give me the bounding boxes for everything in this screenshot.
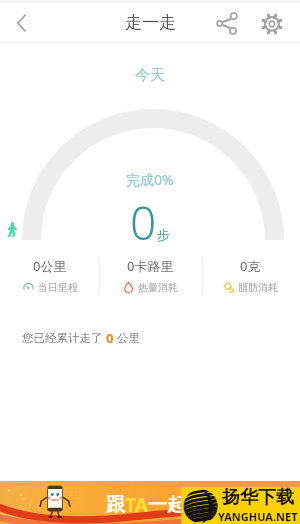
staticText: 0 [106, 329, 114, 347]
staticText: 公里 [114, 330, 140, 346]
staticText: 您已经累计走了 [22, 330, 106, 346]
staticText: 当日里程 [38, 281, 78, 294]
staticText: 走一走 [125, 12, 176, 33]
button[interactable]: 0公里 [0, 248, 100, 303]
button[interactable]: 0克 [200, 248, 300, 303]
staticText: 跟 [106, 493, 125, 517]
staticText: 完成0% [126, 170, 174, 189]
staticText: 0卡路里 [127, 257, 174, 275]
button[interactable]: Banner ad [0, 481, 300, 524]
staticText: 扬华下载 [222, 486, 294, 509]
staticText: YANGHUA.NET [218, 509, 298, 523]
staticText: 热量消耗 [138, 281, 178, 294]
staticText: TA [125, 492, 148, 518]
button[interactable]: Back [6, 7, 38, 39]
staticText: 今天 [0, 66, 300, 85]
staticText: 0 [130, 191, 157, 248]
staticText: 一起 [148, 493, 186, 517]
button[interactable]: Share [212, 8, 242, 38]
staticText: 步 [157, 227, 170, 243]
button[interactable]: Settings [256, 8, 286, 38]
staticText: 0公里 [33, 257, 67, 275]
staticText: 脂肪消耗 [238, 281, 278, 294]
button[interactable]: 0卡路里 [100, 248, 200, 303]
staticText: 0克 [240, 257, 261, 275]
